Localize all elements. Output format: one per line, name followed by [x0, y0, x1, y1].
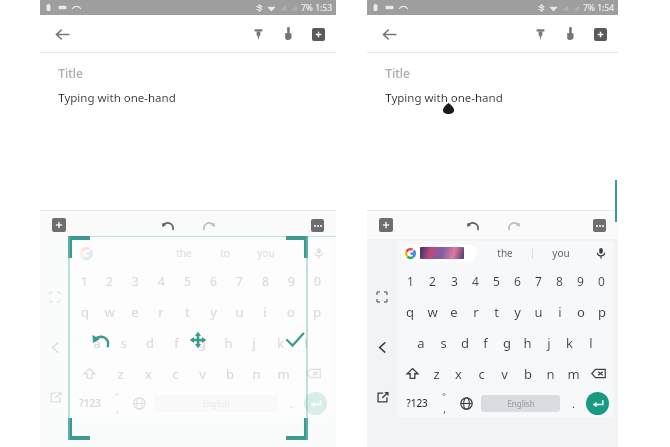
- button[interactable]: i: [549, 296, 570, 327]
- button[interactable]: Exit one-handed mode: [42, 384, 68, 410]
- button[interactable]: Language: [454, 389, 478, 417]
- button[interactable]: More options: [306, 214, 328, 236]
- button[interactable]: c: [470, 358, 493, 389]
- button[interactable]: Back: [377, 22, 401, 46]
- button[interactable]: Redo: [501, 213, 525, 237]
- button[interactable]: s: [110, 327, 137, 358]
- button[interactable]: k: [267, 327, 293, 358]
- button[interactable]: 4: [465, 265, 486, 296]
- button[interactable]: e: [122, 296, 148, 327]
- button[interactable]: m: [562, 358, 585, 389]
- button[interactable]: i: [252, 296, 278, 327]
- button[interactable]: c: [162, 358, 189, 389]
- button[interactable]: Redo: [196, 213, 220, 237]
- button[interactable]: More options: [588, 214, 610, 236]
- button[interactable]: Add: [306, 22, 330, 46]
- button[interactable]: z: [425, 358, 447, 389]
- button[interactable]: x: [134, 358, 162, 389]
- button[interactable]: Confirm: [282, 327, 308, 353]
- button[interactable]: Add item: [48, 214, 70, 236]
- button[interactable]: 8: [252, 265, 278, 296]
- button[interactable]: Voice input: [588, 247, 614, 259]
- button[interactable]: u: [528, 296, 549, 327]
- button[interactable]: l: [293, 327, 319, 358]
- button[interactable]: Enter: [583, 389, 611, 417]
- button[interactable]: t: [174, 296, 200, 327]
- button[interactable]: 7: [528, 265, 549, 296]
- button[interactable]: r: [148, 296, 174, 327]
- button[interactable]: Period: [563, 389, 583, 417]
- button[interactable]: t: [486, 296, 507, 327]
- button[interactable]: 2: [421, 265, 443, 296]
- button[interactable]: g: [189, 327, 215, 358]
- button[interactable]: 3: [443, 265, 465, 296]
- button[interactable]: Undo: [461, 213, 485, 237]
- button[interactable]: ?123: [400, 389, 434, 417]
- button[interactable]: Move keyboard left: [42, 334, 68, 360]
- button[interactable]: v: [493, 358, 516, 389]
- button[interactable]: 9: [278, 265, 304, 296]
- button[interactable]: y: [507, 296, 528, 327]
- button[interactable]: 9: [570, 265, 591, 296]
- button[interactable]: 6: [200, 265, 226, 296]
- button[interactable]: l: [580, 327, 601, 358]
- button[interactable]: Move keyboard left: [369, 334, 395, 360]
- button[interactable]: y: [200, 296, 226, 327]
- button[interactable]: w: [97, 296, 122, 327]
- button[interactable]: One-handed mode: [276, 22, 300, 46]
- button[interactable]: o: [278, 296, 304, 327]
- button[interactable]: One-handed mode: [558, 22, 582, 46]
- button[interactable]: a: [83, 327, 110, 358]
- button[interactable]: Back: [50, 22, 74, 46]
- button[interactable]: d: [454, 327, 475, 358]
- button[interactable]: j: [241, 327, 267, 358]
- button[interactable]: 3: [122, 265, 148, 296]
- button[interactable]: Comma: [434, 389, 454, 417]
- button[interactable]: English: [481, 395, 560, 412]
- button[interactable]: x: [447, 358, 470, 389]
- button[interactable]: 6: [507, 265, 528, 296]
- button[interactable]: 5: [486, 265, 507, 296]
- button[interactable]: f: [163, 327, 189, 358]
- button[interactable]: Add item: [375, 214, 397, 236]
- button[interactable]: Shift: [72, 358, 106, 389]
- button[interactable]: 0: [304, 265, 330, 296]
- button[interactable]: Undo: [156, 213, 180, 237]
- button[interactable]: u: [226, 296, 252, 327]
- button[interactable]: ?123: [73, 389, 107, 417]
- button[interactable]: r: [465, 296, 486, 327]
- button[interactable]: 1: [72, 265, 97, 296]
- button[interactable]: m: [270, 358, 297, 389]
- button[interactable]: o: [570, 296, 591, 327]
- button[interactable]: Enter: [301, 389, 329, 417]
- button[interactable]: Language: [127, 389, 151, 417]
- button[interactable]: q: [72, 296, 97, 327]
- button[interactable]: Pin: [528, 22, 552, 46]
- button[interactable]: Move: [185, 327, 211, 353]
- button[interactable]: n: [539, 358, 562, 389]
- button[interactable]: n: [243, 358, 270, 389]
- button[interactable]: 2: [97, 265, 122, 296]
- button[interactable]: Backspace: [585, 358, 612, 389]
- button[interactable]: Backspace: [297, 358, 330, 389]
- button[interactable]: 4: [148, 265, 174, 296]
- button[interactable]: Shift: [399, 358, 425, 389]
- button[interactable]: b: [516, 358, 539, 389]
- button[interactable]: e: [443, 296, 465, 327]
- button[interactable]: b: [216, 358, 243, 389]
- button[interactable]: Undo gesture: [88, 327, 114, 353]
- button[interactable]: d: [137, 327, 163, 358]
- button[interactable]: a: [410, 327, 432, 358]
- button[interactable]: h: [215, 327, 241, 358]
- button[interactable]: Resize keyboard: [369, 284, 395, 310]
- button[interactable]: Pin: [246, 22, 270, 46]
- button[interactable]: q: [399, 296, 421, 327]
- button[interactable]: k: [559, 327, 580, 358]
- button[interactable]: [401, 244, 477, 262]
- button[interactable]: Exit one-handed mode: [369, 384, 395, 410]
- button[interactable]: Voice input: [306, 247, 332, 259]
- button[interactable]: 8: [549, 265, 570, 296]
- button[interactable]: j: [538, 327, 559, 358]
